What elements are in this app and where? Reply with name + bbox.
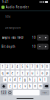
button[interactable]: Increment xyxy=(43,44,48,50)
staticText: r xyxy=(17,71,18,75)
staticText: u xyxy=(31,71,33,75)
staticText: v xyxy=(24,84,25,88)
button[interactable]: v xyxy=(23,83,27,89)
button[interactable]: Increment xyxy=(43,35,48,41)
button[interactable]: u xyxy=(30,70,34,76)
staticText: l xyxy=(44,78,45,81)
button[interactable]: k xyxy=(38,77,42,82)
button[interactable]: j xyxy=(33,77,37,82)
staticText: t xyxy=(22,71,23,75)
staticText: 7 xyxy=(31,65,33,68)
button[interactable]: 5 xyxy=(20,64,25,69)
staticText: x xyxy=(14,84,15,88)
staticText: 10 xyxy=(32,45,36,48)
button[interactable]: b xyxy=(28,83,32,89)
staticText: d xyxy=(14,78,16,81)
staticText: 3 xyxy=(12,65,14,68)
staticText: 5 xyxy=(21,65,23,68)
staticText: 0 xyxy=(46,65,48,68)
button[interactable]: l xyxy=(43,77,47,82)
button[interactable]: Shift xyxy=(1,83,7,89)
button[interactable]: 2 xyxy=(6,64,10,69)
button[interactable]: Description xyxy=(0,22,50,33)
button[interactable]: Space xyxy=(13,90,39,95)
button[interactable]: z xyxy=(8,83,12,89)
staticText: 1 xyxy=(2,65,4,68)
staticText: 123 xyxy=(1,91,7,94)
button[interactable]: 8 xyxy=(35,64,39,69)
staticText: Audio Recorder xyxy=(6,5,29,9)
staticText: j xyxy=(34,78,35,81)
staticText: o xyxy=(41,71,43,75)
staticText: n xyxy=(34,84,36,88)
button[interactable]: 0 xyxy=(45,64,49,69)
staticText: 2 xyxy=(7,65,9,68)
staticText: q xyxy=(2,71,4,75)
button[interactable]: 6 xyxy=(25,64,29,69)
staticText: 9:41 xyxy=(2,0,9,4)
staticText: g xyxy=(24,78,26,81)
staticText: 8 xyxy=(36,65,38,68)
staticText: z xyxy=(9,84,10,88)
button[interactable]: s xyxy=(8,77,12,82)
button[interactable]: y xyxy=(25,70,29,76)
staticText: return xyxy=(42,92,47,94)
staticText: w xyxy=(7,71,9,75)
button[interactable]: 7 xyxy=(30,64,34,69)
staticText: Bit depth xyxy=(1,45,15,48)
button[interactable]: Decrement xyxy=(37,35,42,41)
button[interactable]: Title xyxy=(0,11,50,22)
staticText: Description xyxy=(5,26,21,29)
staticText: Title xyxy=(5,15,11,18)
button[interactable]: x xyxy=(13,83,17,89)
staticText: m xyxy=(39,84,41,88)
staticText: b xyxy=(29,84,31,88)
button[interactable]: 1 xyxy=(1,64,5,69)
staticText: a xyxy=(4,78,5,81)
button[interactable]: return xyxy=(40,90,49,95)
staticText: 10 xyxy=(32,36,36,39)
button[interactable]: Decrement xyxy=(37,44,42,50)
button[interactable]: c xyxy=(18,83,22,89)
staticText: e xyxy=(12,71,14,75)
staticText: 9 xyxy=(41,65,43,68)
button[interactable]: 123 xyxy=(1,90,7,95)
button[interactable]: t xyxy=(20,70,25,76)
staticText: c xyxy=(19,84,20,88)
button[interactable]: 3 xyxy=(10,64,15,69)
staticText: Sample rate (kHz) xyxy=(1,36,23,39)
button[interactable]: i xyxy=(35,70,39,76)
staticText: 6 xyxy=(26,65,28,68)
staticText: i xyxy=(37,71,38,75)
button[interactable]: q xyxy=(1,70,5,76)
button[interactable]: e xyxy=(10,70,15,76)
button[interactable]: Next keyboard xyxy=(8,90,12,95)
staticText: y xyxy=(27,71,28,75)
button[interactable]: f xyxy=(18,77,22,82)
button[interactable]: o xyxy=(40,70,44,76)
staticText: 4 xyxy=(16,65,18,68)
button[interactable]: m xyxy=(38,83,42,89)
staticText: p xyxy=(46,71,48,75)
button[interactable]: p xyxy=(45,70,49,76)
button[interactable]: n xyxy=(33,83,37,89)
button[interactable]: 4 xyxy=(15,64,20,69)
button[interactable]: d xyxy=(13,77,17,82)
button[interactable]: w xyxy=(6,70,10,76)
button[interactable]: r xyxy=(15,70,20,76)
button[interactable]: h xyxy=(28,77,32,82)
button[interactable]: Delete xyxy=(43,83,49,89)
button[interactable]: 9 xyxy=(40,64,44,69)
button[interactable]: g xyxy=(23,77,27,82)
button[interactable]: Audio Recorder xyxy=(0,4,50,10)
button[interactable]: a xyxy=(3,77,7,82)
staticText: h xyxy=(29,78,31,81)
